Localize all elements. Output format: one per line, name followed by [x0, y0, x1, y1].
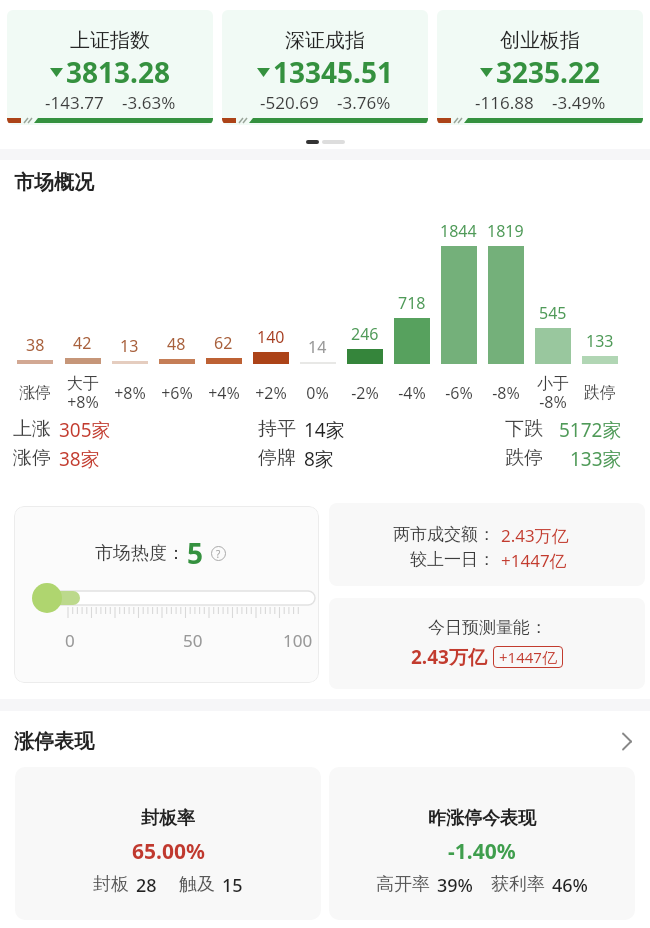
- staticText: -3.63%: [122, 91, 176, 114]
- staticText: 133: [586, 330, 614, 352]
- staticText: 昨涨停今表现: [428, 807, 536, 830]
- staticText: 今日预测量能：: [428, 617, 547, 638]
- staticText: +6%: [161, 382, 193, 404]
- staticText: 创业板指: [500, 28, 580, 53]
- staticText: 14: [308, 336, 327, 358]
- button[interactable]: 今日预测量能：: [329, 598, 645, 689]
- staticText: 13345.51: [273, 53, 393, 91]
- staticText: 涨停: [13, 446, 51, 470]
- staticText: 133家: [570, 446, 622, 472]
- button[interactable]: 两市成交额：: [329, 503, 645, 586]
- staticText: 62: [214, 332, 233, 354]
- staticText: 65.00%: [132, 837, 205, 866]
- staticText: -116.88: [475, 91, 534, 114]
- staticText: 上涨: [13, 417, 51, 441]
- staticText: 大于 +8%: [67, 374, 99, 413]
- staticText: +4%: [208, 382, 240, 404]
- staticText: 1819: [487, 220, 524, 242]
- staticText: 13: [120, 335, 139, 357]
- staticText: 涨停: [19, 383, 51, 403]
- button[interactable]: 深证成指: [222, 10, 428, 125]
- button[interactable]: 上证指数: [7, 10, 213, 125]
- staticText: +1447亿: [501, 549, 567, 572]
- staticText: +2%: [255, 382, 287, 404]
- staticText: 38: [26, 334, 45, 356]
- staticText: 市场概况: [14, 170, 94, 195]
- staticText: -2%: [351, 382, 379, 404]
- staticText: 28: [136, 873, 157, 898]
- staticText: 触及: [179, 873, 215, 896]
- staticText: -4%: [398, 382, 426, 404]
- staticText: 246: [351, 323, 379, 345]
- staticText: 8家: [304, 446, 334, 472]
- staticText: 3235.22: [496, 53, 600, 91]
- staticText: -520.69: [260, 91, 319, 114]
- staticText: 5172家: [559, 417, 622, 443]
- staticText: 上证指数: [70, 28, 150, 53]
- staticText: -8%: [492, 382, 520, 404]
- staticText: 100: [283, 629, 313, 651]
- staticText: 48: [167, 333, 186, 355]
- staticText: 市场热度：: [95, 542, 185, 565]
- staticText: 42: [73, 332, 92, 354]
- staticText: 小于 -8%: [537, 374, 569, 413]
- staticText: 14家: [304, 417, 345, 443]
- staticText: 高开率: [376, 873, 430, 896]
- staticText: 下跌: [505, 417, 543, 441]
- button[interactable]: 创业板指: [437, 10, 643, 125]
- staticText: -6%: [445, 382, 473, 404]
- button[interactable]: 市场热度：: [14, 506, 319, 683]
- staticText: 2.43万亿: [411, 644, 487, 670]
- staticText: 持平: [258, 417, 296, 441]
- staticText: 305家: [59, 417, 111, 443]
- staticText: 0: [65, 629, 75, 651]
- staticText: 停牌: [258, 446, 296, 470]
- staticText: 545: [539, 302, 567, 324]
- staticText: 封板率: [141, 807, 195, 830]
- staticText: 38家: [59, 446, 100, 472]
- staticText: 0%: [306, 382, 329, 404]
- staticText: 5: [187, 534, 204, 572]
- staticText: 跌停: [584, 383, 616, 403]
- staticText: ?: [216, 547, 221, 561]
- staticText: -1.40%: [448, 837, 516, 866]
- staticText: 涨停表现: [14, 729, 94, 754]
- staticText: 两市成交额：: [393, 524, 495, 545]
- staticText: 718: [398, 292, 426, 314]
- staticText: 获利率: [491, 873, 545, 896]
- staticText: -3.76%: [337, 91, 391, 114]
- button[interactable]: 昨涨停今表现: [329, 767, 635, 920]
- staticText: -3.49%: [552, 91, 606, 114]
- button[interactable]: 涨停表现: [14, 728, 632, 755]
- staticText: 封板: [93, 873, 129, 896]
- staticText: 140: [257, 326, 285, 348]
- button[interactable]: 封板率: [15, 767, 321, 920]
- staticText: 较上一日：: [410, 549, 495, 570]
- staticText: -143.77: [45, 91, 104, 114]
- staticText: 3813.28: [66, 53, 170, 91]
- staticText: 39%: [437, 873, 473, 898]
- staticText: +1447亿: [499, 647, 557, 667]
- staticText: +8%: [114, 382, 146, 404]
- staticText: 15: [222, 873, 243, 898]
- staticText: 50: [183, 629, 203, 651]
- staticText: 1844: [440, 220, 477, 242]
- staticText: 跌停: [505, 446, 543, 470]
- staticText: 46%: [552, 873, 588, 898]
- staticText: 深证成指: [285, 28, 365, 53]
- staticText: 2.43万亿: [501, 524, 569, 547]
